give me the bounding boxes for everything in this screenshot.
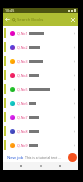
button[interactable]: Q.No8	[3, 124, 78, 138]
staticText: Q.No6	[17, 101, 28, 106]
staticText: Q.No2	[17, 45, 28, 50]
button[interactable]: Q.No3	[3, 54, 78, 68]
staticText: Q.No1	[17, 31, 28, 36]
staticText: Q.No9	[17, 143, 28, 148]
button[interactable]: Clear search	[68, 15, 77, 24]
button[interactable]: Q.No5	[3, 82, 78, 96]
button[interactable]: Q.No1	[3, 26, 78, 40]
staticText: 10:45	[5, 8, 15, 13]
staticText: Q.No7	[17, 115, 28, 120]
button[interactable]: Assistant	[68, 153, 77, 162]
staticText: Q.No3	[17, 59, 28, 64]
button[interactable]: Q.No4	[3, 68, 78, 82]
staticText: Q.No4	[17, 73, 28, 78]
staticText: Q.No5	[17, 87, 28, 92]
button[interactable]: Q.No2	[3, 40, 78, 54]
button[interactable]: Q.No9	[3, 138, 78, 152]
button[interactable]: Q.No6	[3, 96, 78, 110]
staticText: This is a tutorial text ...	[25, 155, 61, 160]
staticText: New job	[7, 155, 24, 161]
staticText: Search Books	[17, 17, 44, 23]
button[interactable]: Back	[3, 15, 12, 24]
button[interactable]: Q.No7	[3, 110, 78, 124]
staticText: Q.No8	[17, 129, 28, 134]
